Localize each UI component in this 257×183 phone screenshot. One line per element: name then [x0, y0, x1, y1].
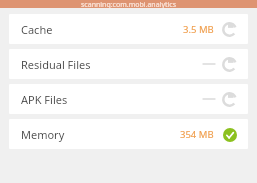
- button[interactable]: APK Files: [9, 84, 248, 114]
- staticText: Residual Files: [21, 57, 91, 72]
- button[interactable]: Cache: [9, 14, 248, 44]
- staticText: APK Files: [21, 92, 68, 107]
- button[interactable]: Memory: [9, 119, 248, 149]
- button[interactable]: Memory scan complete: [221, 126, 238, 143]
- button[interactable]: Scanning in progress: [221, 56, 238, 73]
- staticText: Memory: [21, 127, 65, 142]
- staticText: Cache: [21, 22, 53, 37]
- staticText: scanning:com.mobi.analytics: [81, 0, 176, 8]
- staticText: 354 MB: [180, 128, 214, 141]
- button[interactable]: Scanning in progress: [221, 91, 238, 108]
- button[interactable]: Scanning in progress: [221, 21, 238, 38]
- button[interactable]: Residual Files: [9, 49, 248, 79]
- staticText: 3.5 MB: [183, 23, 214, 36]
